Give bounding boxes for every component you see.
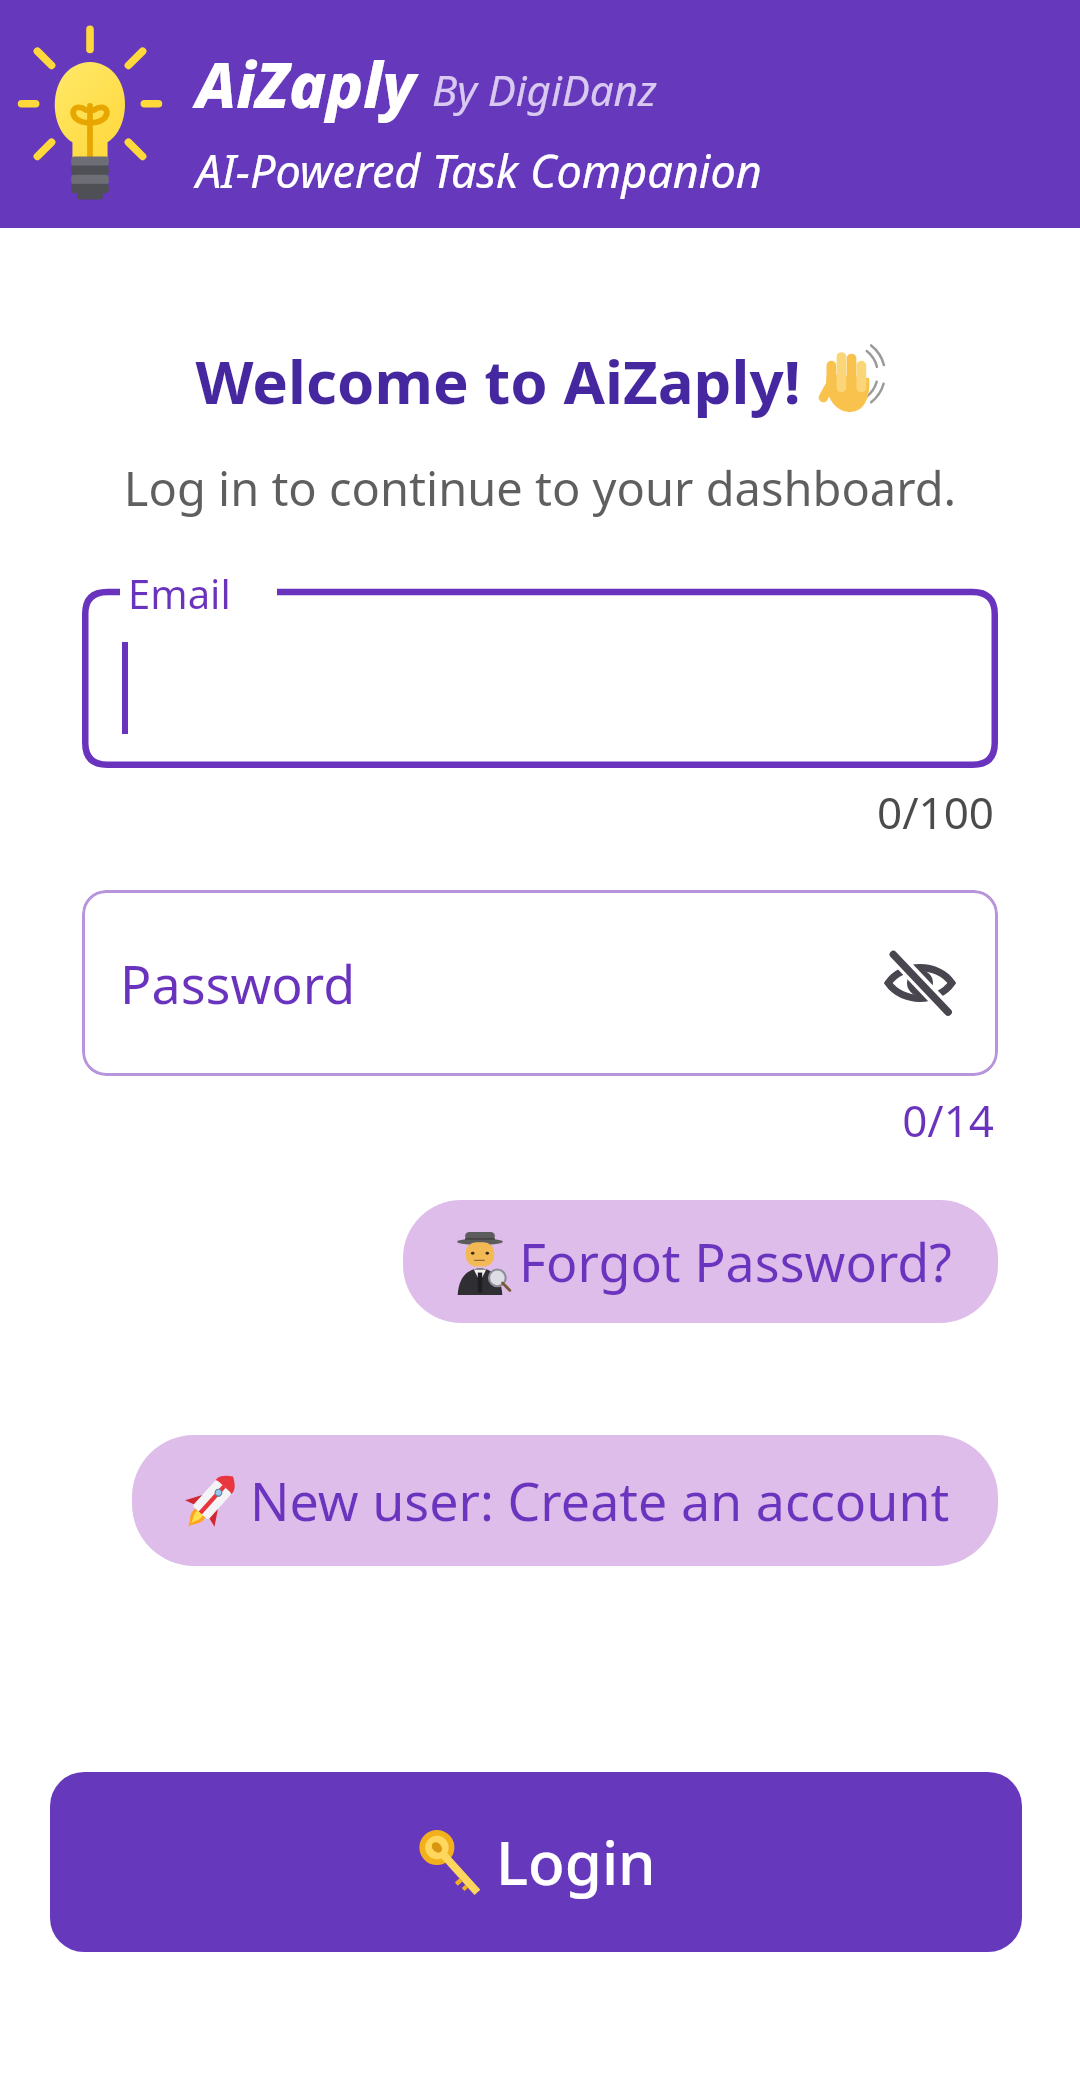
button[interactable]: Password bbox=[82, 890, 998, 1076]
staticText: New user: Create an account bbox=[250, 1465, 950, 1536]
staticText: Password bbox=[120, 948, 356, 1019]
staticText: AiZaply bbox=[196, 42, 416, 126]
button[interactable]: Show password bbox=[874, 937, 966, 1029]
staticText: 0/14 bbox=[0, 1090, 994, 1150]
staticText: Email bbox=[128, 566, 231, 620]
button[interactable]: Email bbox=[82, 580, 998, 768]
staticText: Log in to continue to your dashboard. bbox=[0, 456, 1080, 520]
staticText: Forgot Password? bbox=[519, 1226, 952, 1297]
staticText: AI-Powered Task Companion bbox=[196, 140, 762, 201]
staticText: 0/100 bbox=[0, 782, 994, 842]
staticText: By DigiDanz bbox=[432, 61, 657, 118]
button[interactable]: Login bbox=[50, 1772, 1022, 1952]
button[interactable]: New user: Create an account bbox=[132, 1435, 998, 1566]
staticText: Login bbox=[496, 1821, 656, 1903]
staticText: Welcome to AiZaply! bbox=[195, 340, 801, 422]
button[interactable]: Forgot Password? bbox=[403, 1200, 998, 1323]
